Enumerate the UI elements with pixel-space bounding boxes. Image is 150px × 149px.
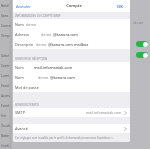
staticText: @kanora.com mailbox xyxy=(48,42,89,47)
staticText: Nom d'utilisateur xyxy=(15,75,36,80)
button[interactable]: Toggle setting xyxy=(136,52,148,58)
staticText: Accès xyxy=(1,93,10,97)
staticText: Compte xyxy=(32,3,116,9)
staticText: Ces réglages sont installés par le profi… xyxy=(15,136,114,140)
button[interactable]: Accès xyxy=(0,90,11,100)
staticText: demo xyxy=(26,22,37,27)
button[interactable]: Nom d'utilisateur xyxy=(13,72,130,82)
staticText: ok.com xyxy=(133,21,144,25)
button[interactable]: Nom d'hôte xyxy=(13,62,130,72)
button[interactable]: Notif xyxy=(0,0,11,10)
staticText: OK xyxy=(117,4,123,9)
staticText: demo xyxy=(41,32,52,37)
staticText: Fond xyxy=(1,103,9,107)
staticText: @kanora.com xyxy=(53,32,78,37)
button[interactable]: Conce xyxy=(0,20,11,30)
staticText: SERVEUR D'ENVOI xyxy=(15,103,39,107)
button[interactable]: Description xyxy=(13,39,130,49)
staticText: demo xyxy=(38,75,49,80)
button[interactable] xyxy=(0,40,11,50)
staticText: Sons xyxy=(1,13,9,17)
button[interactable]: Touch xyxy=(0,120,11,130)
button[interactable]: OK xyxy=(116,2,124,11)
staticText: Nom xyxy=(15,22,24,27)
button[interactable]: Temp xyxy=(0,30,11,40)
button[interactable]: Centr xyxy=(0,60,11,70)
staticText: Lumi xyxy=(1,73,9,77)
staticText: Centr xyxy=(1,63,10,67)
staticText: INFORMATIONS DU COMPTE IMAP xyxy=(15,14,61,18)
staticText: Conce xyxy=(1,23,11,27)
staticText: Notif xyxy=(1,3,9,7)
button[interactable]: Fond xyxy=(0,100,11,110)
button[interactable]: Siri xyxy=(0,110,11,120)
button[interactable]: Avancé xyxy=(13,124,130,133)
button[interactable]: Nom xyxy=(13,19,130,29)
staticText: mail.infomaniak.com xyxy=(34,65,73,70)
staticText: Batte xyxy=(1,133,10,137)
button[interactable]: Toggle setting xyxy=(136,41,148,47)
staticText: Annuler xyxy=(16,4,31,9)
staticText: Adresse xyxy=(15,32,39,37)
button[interactable]: Annuler xyxy=(15,2,32,11)
staticText: Confidentialité xyxy=(1,143,11,147)
staticText: demo xyxy=(36,42,47,47)
staticText: Siri xyxy=(1,113,6,117)
button[interactable]: Fond xyxy=(0,80,11,90)
staticText: Mot de passe xyxy=(15,85,39,90)
staticText: Géné xyxy=(1,53,10,57)
button[interactable]: Adresse xyxy=(13,29,130,39)
button[interactable]: Lumi xyxy=(0,70,11,80)
staticText: Avancé xyxy=(15,126,28,131)
staticText: mail.infomaniak.com xyxy=(86,110,122,115)
staticText: Description xyxy=(15,42,34,47)
staticText: SERVEUR DE RÉCEPTION xyxy=(15,57,48,61)
button[interactable]: Mot de passe xyxy=(13,82,130,92)
staticText: Fond xyxy=(1,83,9,87)
staticText: @kanora.com xyxy=(50,75,75,80)
staticText: SMTP xyxy=(15,110,25,115)
staticText: Temp xyxy=(1,33,10,37)
button[interactable]: Sons xyxy=(0,10,11,20)
staticText: Touch xyxy=(1,123,11,127)
button[interactable]: Géné xyxy=(0,50,11,60)
button[interactable]: SMTP xyxy=(13,108,130,117)
staticText: Nom d'hôte xyxy=(15,65,32,70)
button[interactable]: Confidentialité xyxy=(0,140,11,149)
button[interactable]: Batte xyxy=(0,130,11,140)
